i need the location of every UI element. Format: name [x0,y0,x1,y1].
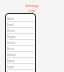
staticText: page [28,9,36,13]
button[interactable]: Email [5,22,36,28]
staticText: Region [7,35,16,39]
button[interactable]: Alerts [5,46,36,52]
staticText: Backup [7,53,16,57]
staticText: About [7,59,15,63]
staticText: Log out [7,71,17,72]
staticText: Alerts [7,47,15,51]
button[interactable]: Log out [5,70,36,72]
button[interactable]: Backup [5,52,36,58]
button[interactable]: About [5,58,36,64]
staticText: Email [7,23,14,27]
staticText: Phone [7,29,15,33]
button[interactable]: Region [5,34,36,40]
staticText: Name [7,17,15,21]
button[interactable]: Theme [5,40,36,46]
button[interactable]: Name [5,16,36,22]
staticText: Theme [7,41,16,45]
button[interactable]: Phone [5,28,36,34]
staticText: Settings [25,3,39,8]
staticText: Legal [7,65,14,69]
button[interactable]: Legal [5,64,36,70]
